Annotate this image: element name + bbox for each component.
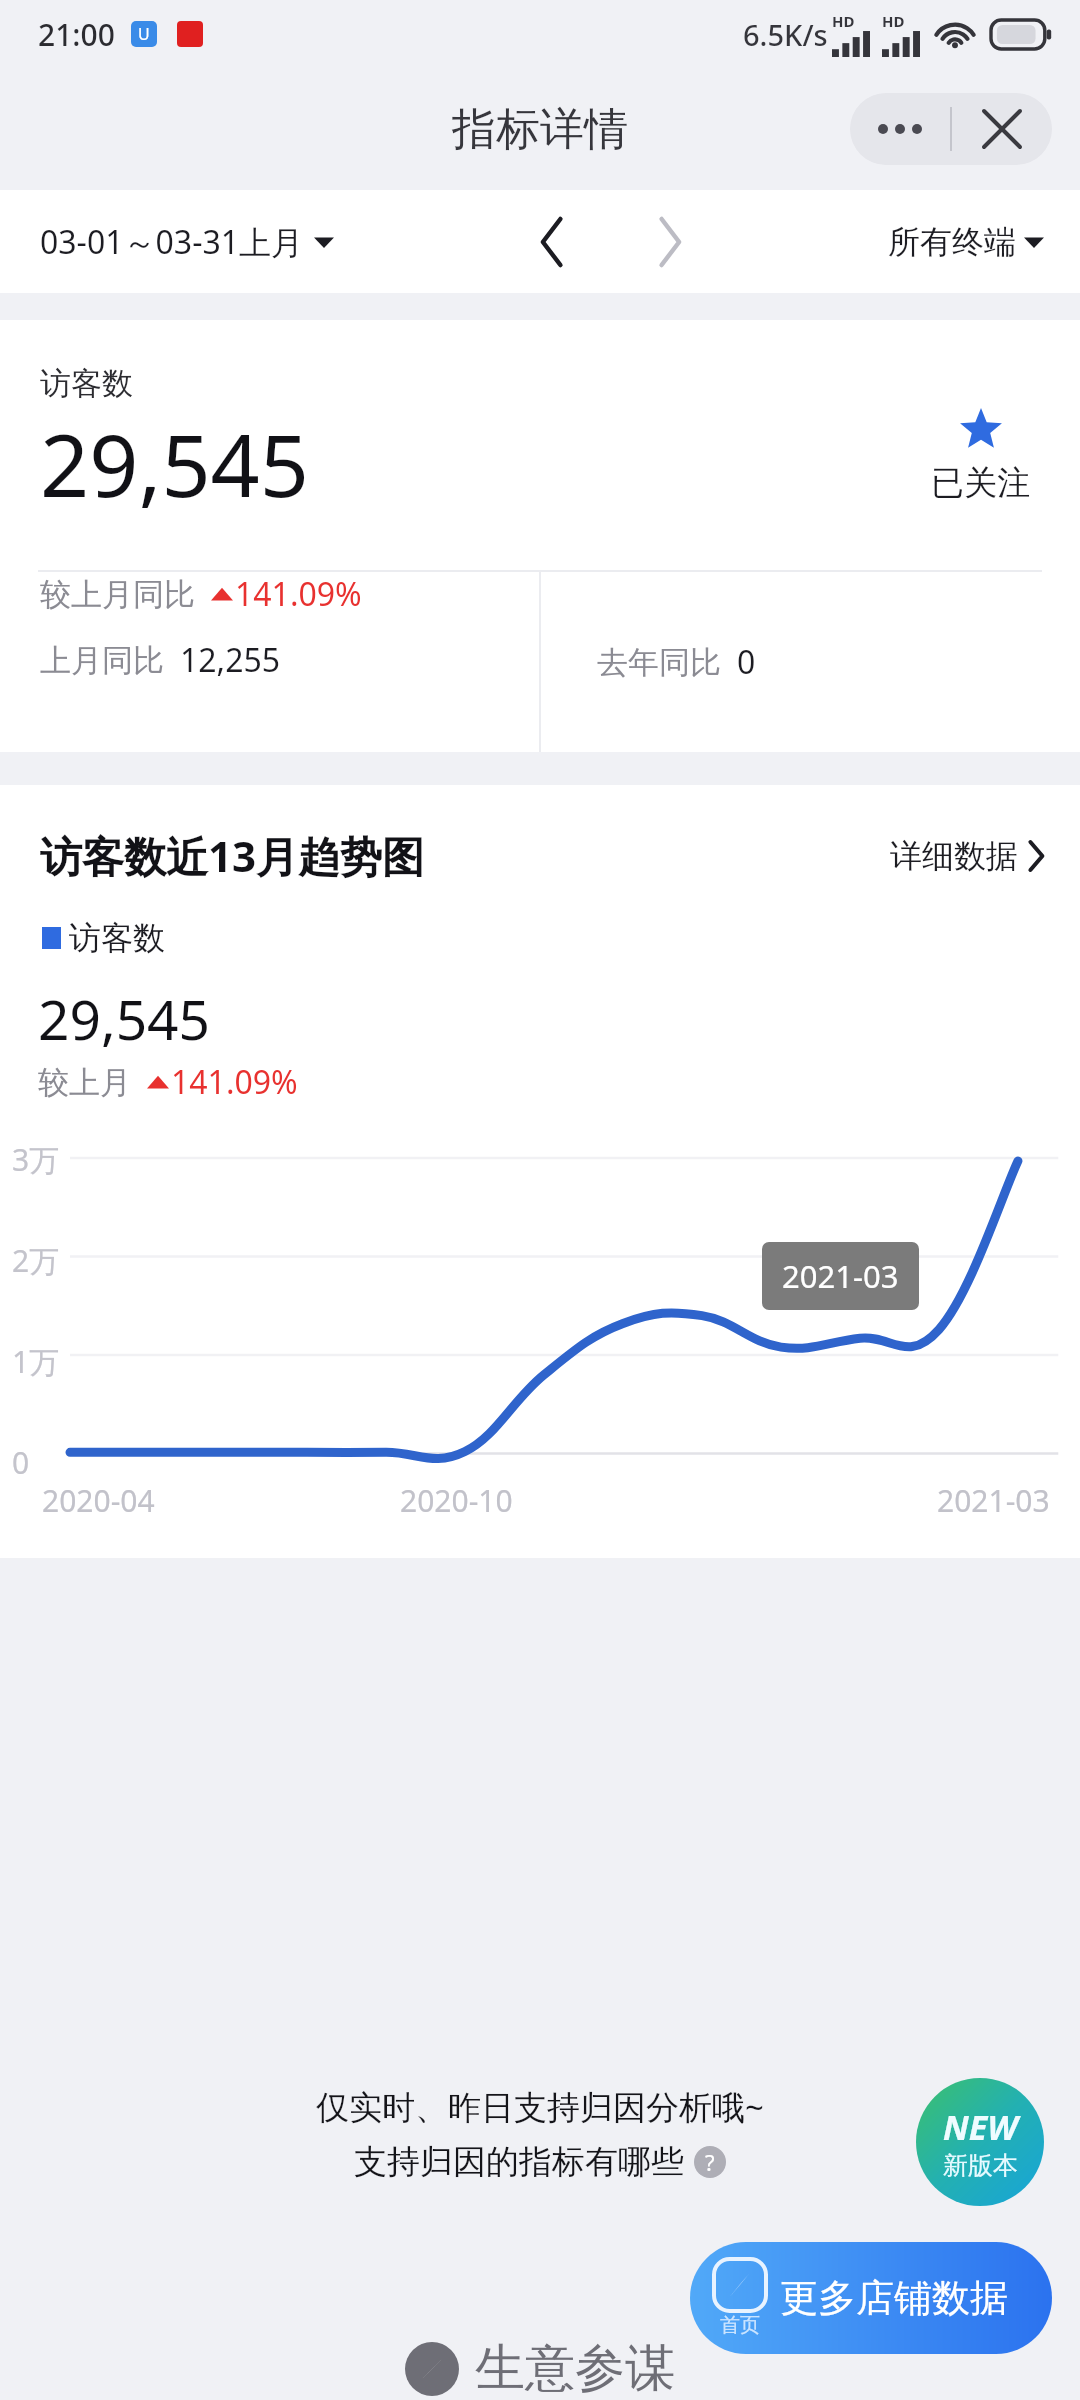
staticText: 上月同比 — [40, 641, 164, 680]
staticText: 2021-03 — [937, 1480, 1050, 1521]
button[interactable]: 03-01～03-31上月 — [40, 220, 334, 264]
staticText: 访客数 — [40, 364, 133, 403]
staticText: 03-01～03-31上月 — [40, 220, 304, 264]
staticText: 指标详情 — [452, 102, 628, 157]
staticText: 21:00 — [38, 14, 115, 55]
staticText: U — [138, 23, 150, 45]
button[interactable]: Previous period — [513, 202, 591, 282]
staticText: 所有终端 — [888, 222, 1016, 262]
staticText: 访客数 — [69, 918, 165, 958]
button[interactable]: Next period — [631, 202, 709, 282]
button[interactable]: More options — [850, 93, 950, 165]
button[interactable]: Help — [694, 2146, 726, 2178]
staticText: 0 — [737, 640, 756, 684]
staticText: HD — [832, 11, 855, 31]
staticText: 2021-03 — [782, 1255, 899, 1297]
staticText: 29,545 — [38, 981, 211, 1056]
staticText: ? — [705, 2147, 715, 2177]
staticText: 新版本 — [943, 2150, 1018, 2181]
staticText: 详细数据 — [890, 836, 1018, 876]
button[interactable]: Close — [952, 93, 1052, 165]
button[interactable]: 首页 — [690, 2242, 1052, 2354]
staticText: 较上月同比 — [40, 575, 195, 614]
staticText: 2020-04 — [42, 1480, 155, 1521]
button[interactable]: 已关注 — [931, 408, 1030, 504]
staticText: 0 — [12, 1442, 30, 1483]
staticText: HD — [882, 11, 905, 31]
button[interactable]: 详细数据 — [890, 836, 1044, 876]
staticText: 仅实时、昨日支持归因分析哦~ — [316, 2084, 764, 2129]
staticText: 首页 — [720, 2313, 760, 2338]
staticText: 支持归因的指标有哪些 — [354, 2141, 684, 2183]
staticText: 更多店铺数据 — [780, 2274, 1008, 2322]
button[interactable]: 所有终端 — [888, 222, 1044, 262]
staticText: 较上月 — [38, 1063, 131, 1102]
staticText: 3万 — [12, 1139, 60, 1180]
staticText: 去年同比 — [597, 643, 721, 682]
staticText: 12,255 — [180, 638, 281, 682]
staticText: 29,545 — [40, 405, 310, 522]
button[interactable]: NEW — [916, 2078, 1044, 2206]
staticText: 2020-10 — [400, 1480, 513, 1521]
staticText: 已关注 — [931, 462, 1030, 504]
staticText: 2万 — [12, 1240, 60, 1281]
staticText: 访客数近13月趋势图 — [40, 827, 425, 884]
staticText: 141.09% — [171, 1060, 298, 1104]
staticText: 6.5K/s — [743, 15, 828, 54]
staticText: 生意参谋 — [475, 2337, 675, 2400]
staticText: 1万 — [12, 1341, 60, 1382]
staticText: NEW — [943, 2104, 1018, 2150]
staticText: 141.09% — [235, 572, 362, 616]
